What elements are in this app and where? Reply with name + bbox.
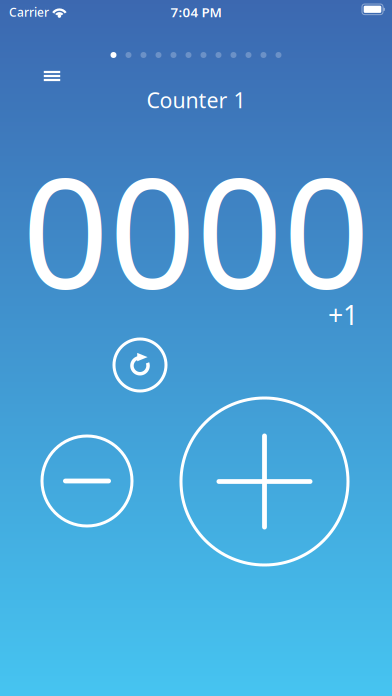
staticText: 0000 xyxy=(22,128,370,330)
staticText: Carrier xyxy=(9,4,49,20)
button[interactable]: Reset counter xyxy=(114,339,166,391)
button[interactable]: Decrease count xyxy=(42,436,132,526)
staticText: +1 xyxy=(328,297,358,332)
staticText: Counter 1 xyxy=(146,86,245,114)
staticText: 7:04 PM xyxy=(170,3,221,21)
button[interactable]: Increase count xyxy=(181,398,348,565)
button[interactable]: Menu xyxy=(29,55,75,97)
